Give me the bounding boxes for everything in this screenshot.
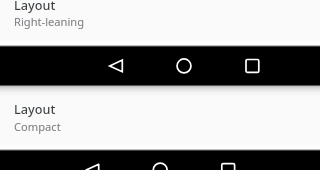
button[interactable]: Home [170, 52, 198, 80]
staticText: Layout [14, 100, 56, 117]
button[interactable]: Back [78, 156, 106, 170]
button[interactable]: Recents [238, 52, 266, 80]
staticText: Right-leaning [14, 14, 85, 29]
staticText: Compact [14, 119, 61, 134]
button[interactable]: Home [146, 156, 174, 170]
button[interactable]: Back [102, 52, 130, 80]
button[interactable]: Recents [214, 156, 242, 170]
staticText: Layout [14, 0, 56, 13]
